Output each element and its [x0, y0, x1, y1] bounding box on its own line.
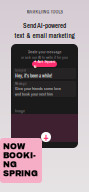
staticText: text & email marketing	[14, 31, 74, 40]
staticText: ✦ Ask Square AI	[33, 59, 55, 69]
staticText: NOW	[3, 142, 25, 151]
staticText: Send AI-powered	[23, 21, 66, 30]
staticText: SPRING	[3, 169, 38, 178]
staticText: Give your friends some love	[15, 86, 61, 91]
staticText: BOOKING	[3, 151, 38, 169]
button[interactable]: ✦ Ask Square AI	[32, 61, 57, 67]
staticText: +	[43, 130, 48, 144]
staticText: or ask our AI to write it for you	[21, 55, 68, 60]
button[interactable]: Add image	[41, 132, 51, 142]
staticText: Image	[15, 108, 25, 114]
staticText: Subject	[15, 68, 26, 73]
staticText: Message	[15, 81, 27, 86]
staticText: Hey, it's been a while!	[15, 73, 52, 79]
staticText: and book your next trim	[15, 91, 53, 97]
staticText: Create your message	[27, 49, 61, 55]
staticText: MARKETING TOOLS	[26, 9, 62, 15]
